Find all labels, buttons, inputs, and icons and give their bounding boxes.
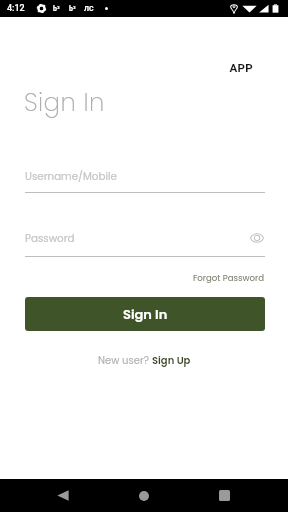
button[interactable]: Sign Up bbox=[152, 353, 191, 367]
staticText: Sign In bbox=[24, 85, 105, 119]
button[interactable]: Recent apps bbox=[206, 479, 246, 512]
staticText: 4:12 bbox=[7, 3, 25, 14]
staticText: New user? bbox=[98, 353, 152, 367]
staticText: b³ bbox=[53, 5, 60, 13]
button[interactable]: Back bbox=[42, 479, 82, 512]
staticText: b³ bbox=[69, 5, 76, 13]
staticText: Password bbox=[25, 231, 75, 245]
staticText: Sign In bbox=[123, 305, 168, 323]
staticText: Sign Up bbox=[152, 353, 191, 367]
staticText: ЛC bbox=[84, 5, 94, 13]
staticText: APP bbox=[0, 61, 253, 74]
staticText: Username/Mobile bbox=[25, 169, 117, 183]
button[interactable]: Forgot Password bbox=[193, 272, 265, 284]
button[interactable]: Sign In bbox=[25, 297, 265, 331]
button[interactable]: Home bbox=[124, 479, 164, 512]
button[interactable]: Show password bbox=[246, 229, 268, 247]
staticText: Forgot Password bbox=[193, 272, 265, 284]
